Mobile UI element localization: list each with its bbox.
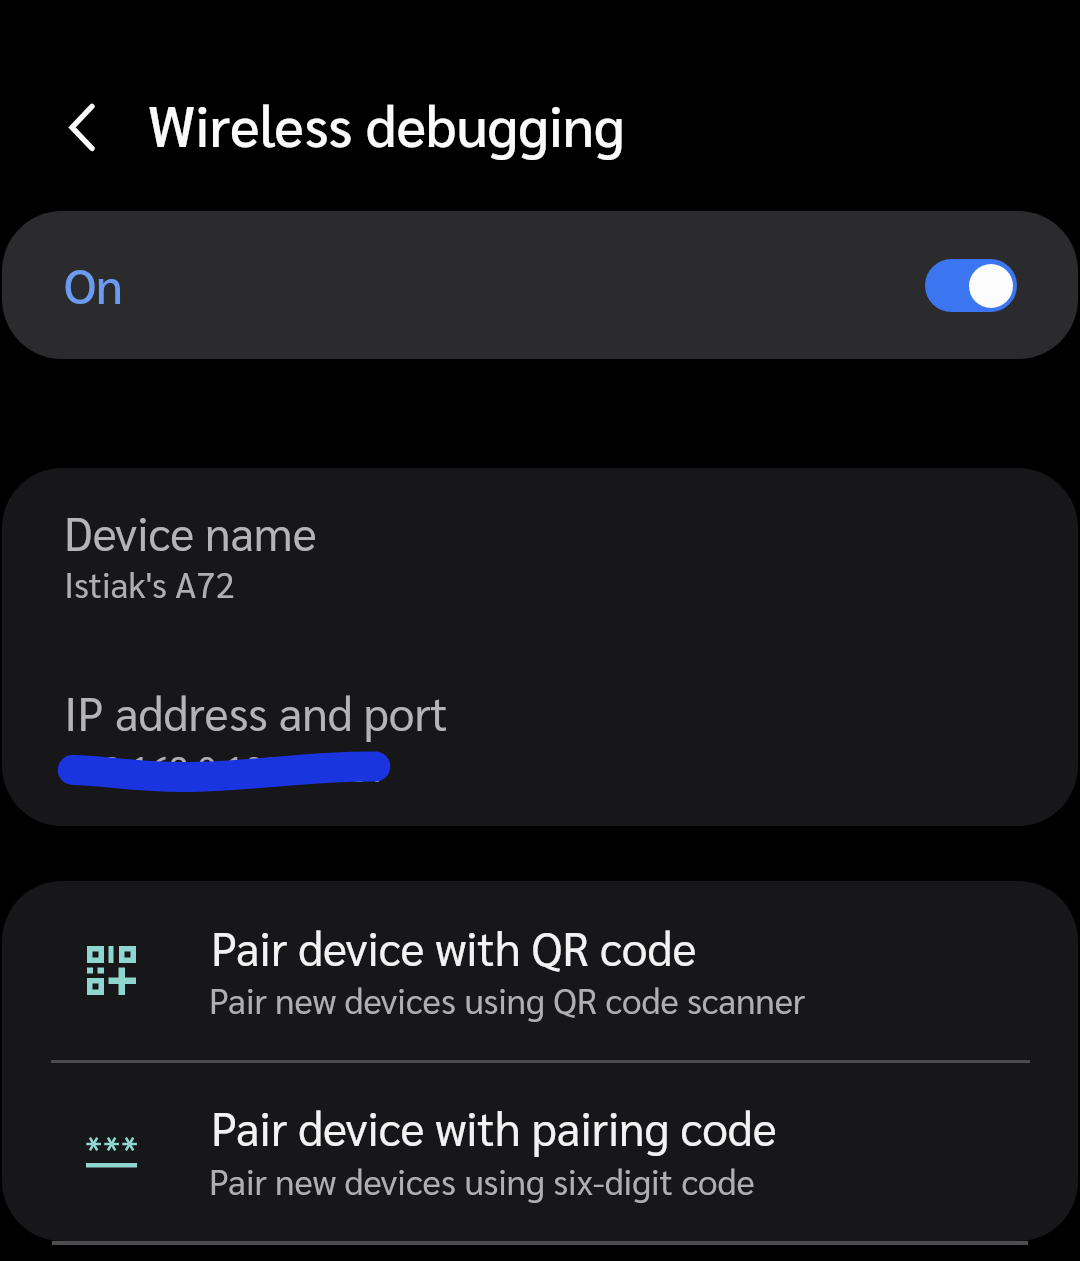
button[interactable]: Navigate up	[48, 93, 118, 163]
button[interactable]: IP address and port	[2, 647, 1078, 826]
staticText: On	[64, 253, 123, 315]
staticText: 192.168.0.102:41237	[64, 745, 389, 790]
staticText: Pair new devices using QR code scanner	[209, 977, 806, 1022]
button[interactable]: Pair device with pairing code	[2, 1063, 1078, 1241]
button[interactable]: Pair device with QR code	[2, 881, 1078, 1061]
button[interactable]: Device name	[2, 468, 1078, 647]
staticText: IP address and port	[64, 682, 448, 742]
staticText: Istiak's A72	[64, 561, 235, 606]
staticText: Pair device with pairing code	[211, 1097, 777, 1157]
staticText: Wireless debugging	[148, 87, 625, 160]
staticText: Device name	[64, 502, 317, 562]
staticText: Pair device with QR code	[211, 917, 697, 977]
button[interactable]: On	[2, 211, 1078, 359]
staticText: Pair new devices using six-digit code	[209, 1158, 755, 1203]
